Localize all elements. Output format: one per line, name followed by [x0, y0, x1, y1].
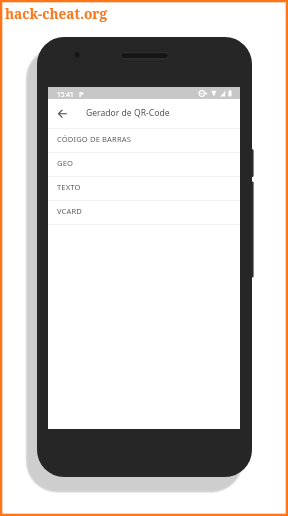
staticText: CÓDIGO DE BARRAS [57, 134, 132, 144]
staticText: Gerador de QR-Code [86, 107, 170, 119]
staticText: 15:41 [57, 90, 74, 99]
button[interactable]: CÓDIGO DE BARRAS [48, 129, 240, 152]
staticText: GEO [57, 158, 74, 168]
button[interactable]: VCARD [48, 201, 240, 224]
staticText: hack-cheat.org [5, 4, 107, 23]
button[interactable]: Back [51, 104, 74, 127]
staticText: P [79, 89, 84, 99]
button[interactable]: GEO [48, 153, 240, 176]
button[interactable]: TEXTO [48, 177, 240, 200]
staticText: VCARD [57, 206, 82, 216]
staticText: TEXTO [57, 182, 81, 192]
